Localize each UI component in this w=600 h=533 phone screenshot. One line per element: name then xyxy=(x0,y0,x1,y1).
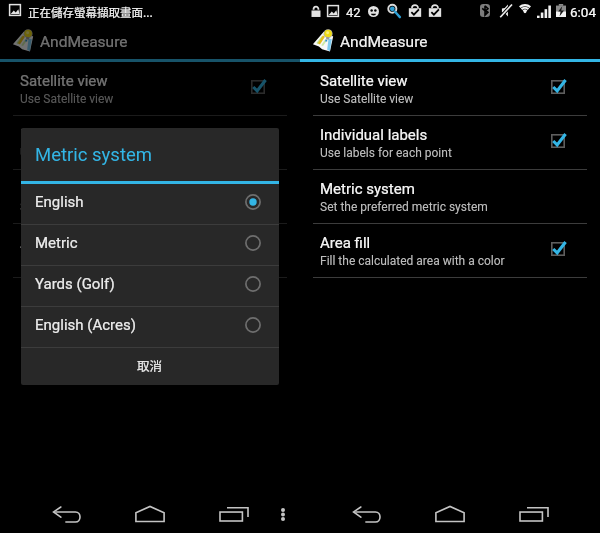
button[interactable]: Toggle setting xyxy=(242,233,274,269)
button[interactable]: Individual labels xyxy=(0,116,300,170)
button[interactable]: Toggle setting xyxy=(542,71,574,107)
button[interactable]: Metric system xyxy=(300,170,600,224)
button[interactable]: Toggle setting xyxy=(242,125,274,161)
button[interactable]: More options xyxy=(269,503,297,525)
staticText: Use labels for each point xyxy=(320,146,452,160)
staticText: Metric system xyxy=(320,180,415,198)
staticText: Fill the calculated area with a color xyxy=(320,254,505,268)
staticText: Use labels for each point xyxy=(20,146,152,160)
button[interactable]: Recent apps xyxy=(512,503,556,525)
staticText: 正在儲存螢幕擷取畫面... xyxy=(28,4,153,21)
button[interactable]: 取消 xyxy=(21,348,279,385)
staticText: Individual labels xyxy=(20,126,128,144)
staticText: 42 xyxy=(346,5,361,20)
button[interactable]: Area fill xyxy=(300,224,600,278)
staticText: Metric system xyxy=(20,180,115,198)
staticText: 6:04 xyxy=(570,4,597,20)
button[interactable]: Toggle setting xyxy=(242,71,274,107)
staticText: Area fill xyxy=(20,234,71,252)
button[interactable]: Home xyxy=(128,503,172,525)
button[interactable]: Back xyxy=(45,503,89,525)
staticText: AndMeasure xyxy=(40,33,128,51)
staticText: English xyxy=(35,193,245,211)
staticText: Use Satellite view xyxy=(20,92,114,106)
staticText: Yards (Golf) xyxy=(35,275,245,293)
button[interactable]: Metric system xyxy=(0,170,300,224)
staticText: Area fill xyxy=(320,234,371,252)
button[interactable]: Area fill xyxy=(0,224,300,278)
staticText: Individual labels xyxy=(320,126,428,144)
staticText: Satellite view xyxy=(20,72,108,90)
button[interactable]: Toggle setting xyxy=(542,125,574,161)
button[interactable]: Individual labels xyxy=(300,116,600,170)
staticText: English (Acres) xyxy=(35,316,245,334)
button[interactable]: Back xyxy=(345,503,389,525)
button[interactable]: Satellite view xyxy=(0,62,300,116)
button[interactable]: Toggle setting xyxy=(542,233,574,269)
staticText: Set the preferred metric system xyxy=(20,200,188,214)
staticText: 取消 xyxy=(137,356,163,374)
button[interactable]: Yards (Golf) xyxy=(21,266,279,307)
button[interactable]: Metric xyxy=(21,225,279,266)
staticText: Fill the calculated area with a color xyxy=(20,254,205,268)
staticText: Satellite view xyxy=(320,72,408,90)
staticText: Set the preferred metric system xyxy=(320,200,488,214)
staticText: AndMeasure xyxy=(340,33,428,51)
button[interactable]: English xyxy=(21,184,279,225)
staticText: Metric system xyxy=(35,144,152,166)
button[interactable]: English (Acres) xyxy=(21,307,279,348)
button[interactable]: Recent apps xyxy=(212,503,256,525)
button[interactable]: Home xyxy=(428,503,472,525)
staticText: Metric xyxy=(35,234,245,252)
button[interactable]: Satellite view xyxy=(300,62,600,116)
staticText: Use Satellite view xyxy=(320,92,414,106)
